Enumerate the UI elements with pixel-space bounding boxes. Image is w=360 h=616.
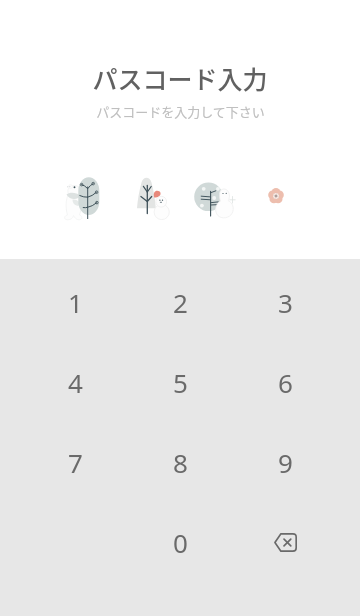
staticText: 4 [68,365,83,400]
button[interactable]: 2 [135,262,225,342]
button[interactable]: 3 [240,262,330,342]
button[interactable]: 4 [30,342,120,422]
staticText: 2 [173,285,188,320]
staticText: 6 [278,365,293,400]
staticText: 9 [278,445,293,480]
button[interactable]: 6 [240,342,330,422]
staticText: パスコード入力 [92,60,268,96]
button[interactable]: 8 [135,422,225,502]
staticText: 1 [68,285,83,320]
button[interactable]: 7 [30,422,120,502]
button[interactable]: 5 [135,342,225,422]
staticText: 7 [68,445,83,480]
button[interactable]: Delete [240,502,330,582]
staticText: 0 [173,525,188,560]
button[interactable]: 1 [30,262,120,342]
staticText: 3 [278,285,293,320]
button[interactable]: 9 [240,422,330,502]
staticText: 5 [173,365,188,400]
button[interactable]: 0 [135,502,225,582]
staticText: パスコードを入力して下さい [96,102,265,121]
staticText: 8 [173,445,188,480]
